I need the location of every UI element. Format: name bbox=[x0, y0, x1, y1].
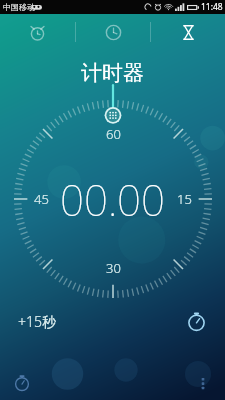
staticText: 11:48 bbox=[201, 1, 223, 13]
button[interactable]: +15秒 bbox=[14, 308, 60, 335]
button[interactable]: Start timer bbox=[181, 306, 211, 336]
staticText: 00.00 bbox=[60, 171, 166, 228]
staticText: 中国移动 bbox=[3, 2, 35, 12]
button[interactable]: Timer bbox=[151, 14, 225, 50]
staticText: 60 bbox=[106, 125, 121, 143]
staticText: 计时器 bbox=[0, 60, 225, 86]
button[interactable]: More options bbox=[190, 370, 216, 396]
staticText: 15 bbox=[177, 190, 192, 208]
staticText: 30 bbox=[106, 259, 121, 277]
staticText: +15秒 bbox=[18, 312, 56, 331]
staticText: 45 bbox=[34, 190, 49, 208]
button[interactable]: World clock bbox=[76, 14, 150, 50]
button[interactable]: Alarm bbox=[0, 14, 75, 50]
button[interactable]: Stopwatch bbox=[9, 370, 35, 396]
